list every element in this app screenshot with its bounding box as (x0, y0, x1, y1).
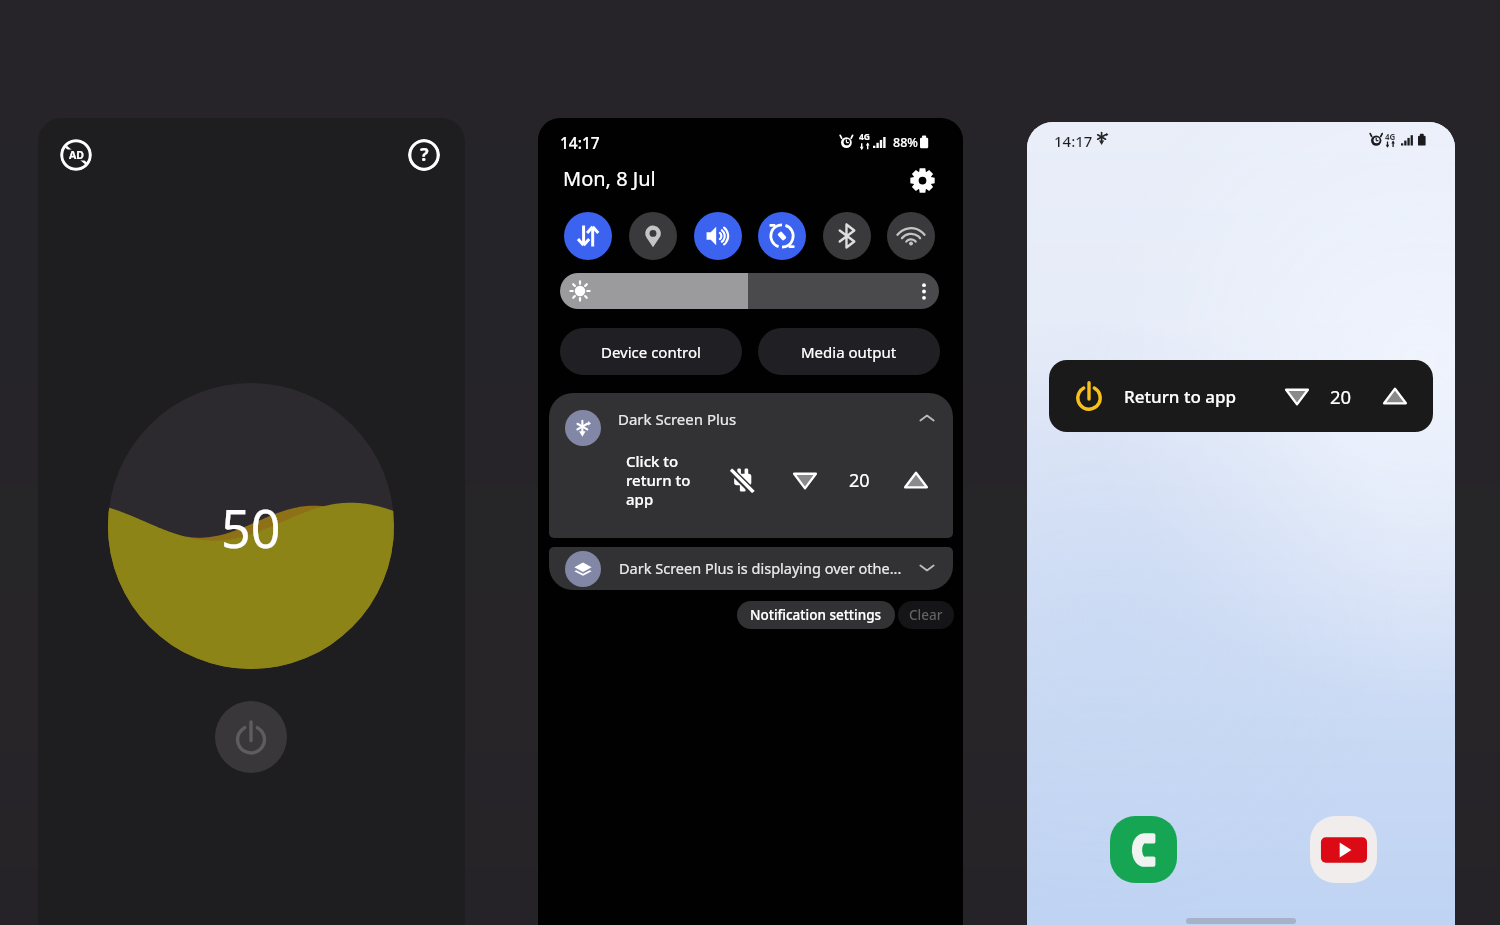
staticText: 4G (1385, 131, 1396, 142)
button[interactable]: Sound (694, 212, 742, 260)
button[interactable]: Auto rotate (758, 212, 806, 260)
button[interactable]: Device control (560, 328, 742, 375)
button[interactable]: Media output (758, 328, 940, 375)
button[interactable]: Dark Screen Plus (549, 393, 953, 538)
staticText: Dark Screen Plus is displaying over othe… (619, 558, 902, 578)
staticText: ? (420, 142, 429, 167)
staticText: Click to return to app (626, 451, 702, 509)
staticText: Return to app (1124, 385, 1237, 408)
button[interactable]: Phone (1110, 816, 1177, 883)
staticText: 14:17 (560, 132, 600, 153)
button[interactable]: Expand (912, 553, 942, 583)
button[interactable]: Clear (898, 601, 954, 629)
staticText: Notification settings (750, 606, 882, 624)
staticText: 4G (859, 131, 871, 143)
button[interactable]: Location (629, 212, 677, 260)
button[interactable]: Collapse (912, 403, 942, 433)
staticText: 20 (849, 468, 870, 493)
staticText: AD (69, 148, 84, 162)
button[interactable]: Decrease (1281, 380, 1313, 412)
button[interactable]: Increase (900, 464, 932, 496)
staticText: 20 (1330, 384, 1352, 409)
staticText: Clear (909, 606, 943, 624)
button[interactable]: Decrease (789, 464, 821, 496)
staticText: 14:17 (1054, 131, 1093, 151)
staticText: 88% (893, 134, 918, 151)
button[interactable]: Notification settings (737, 601, 895, 629)
button[interactable]: Mobile data (564, 212, 612, 260)
button[interactable]: Unplug (727, 464, 759, 496)
button[interactable]: Increase (1379, 380, 1411, 412)
button[interactable]: Power (215, 701, 287, 773)
staticText: Dark Screen Plus (618, 409, 737, 429)
button[interactable]: Bluetooth (823, 212, 871, 260)
button[interactable]: Settings (905, 163, 939, 197)
button[interactable]: Help (408, 139, 440, 171)
staticText: Device control (601, 342, 701, 362)
button[interactable]: Remove ads (60, 139, 92, 171)
staticText: Media output (801, 342, 897, 362)
staticText: Mon, 8 Jul (563, 165, 656, 192)
button[interactable]: Return to app (1049, 360, 1433, 432)
staticText: 50 (221, 492, 281, 563)
button[interactable]: Dark Screen Plus is displaying over othe… (549, 547, 953, 590)
button[interactable]: Wi-Fi (887, 212, 935, 260)
button[interactable]: YouTube (1310, 816, 1377, 883)
button[interactable]: Brightness (560, 273, 939, 309)
